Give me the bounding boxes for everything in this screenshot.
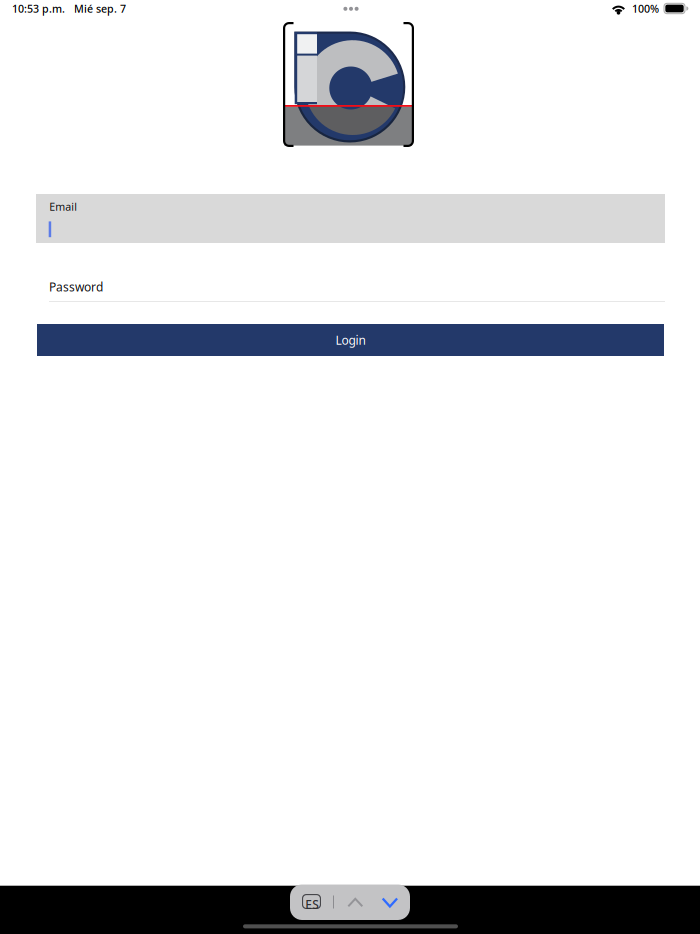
button[interactable]: Previous field <box>344 884 366 920</box>
staticText: Password <box>49 279 103 295</box>
button[interactable]: Login <box>37 324 664 356</box>
staticText: 100% <box>632 1 659 16</box>
staticText: Login <box>335 332 365 348</box>
button[interactable]: Keyboard language <box>302 894 321 909</box>
staticText: Email <box>49 200 77 214</box>
staticText: ES <box>305 896 319 912</box>
staticText: 10:53 p.m. <box>12 1 65 16</box>
button[interactable]: Next field <box>379 884 401 920</box>
staticText: Mié sep. 7 <box>74 1 126 16</box>
button[interactable]: Password <box>36 270 664 302</box>
button[interactable]: Email <box>36 194 665 243</box>
